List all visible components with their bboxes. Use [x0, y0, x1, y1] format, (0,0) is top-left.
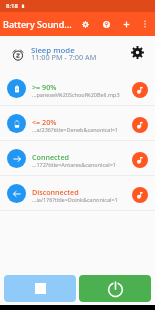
- button[interactable]: Help: [96, 12, 117, 36]
- button[interactable]: More options: [136, 12, 154, 36]
- button[interactable]: <= 20%: [0, 106, 155, 140]
- staticText: Disconnected: [32, 187, 79, 197]
- button[interactable]: Play sound: [126, 176, 155, 210]
- staticText: Sleep mode: [31, 45, 75, 56]
- button[interactable]: Add: [117, 12, 136, 36]
- staticText: <= 20%: [32, 117, 57, 127]
- button[interactable]: Sleep mode settings: [120, 36, 155, 71]
- staticText: 8:18: [6, 2, 18, 10]
- button[interactable]: Play sound: [126, 141, 155, 175]
- staticText: Connected: [32, 152, 69, 162]
- button[interactable]: Play sound: [126, 71, 155, 105]
- button[interactable]: Disconnected: [0, 176, 155, 210]
- staticText: ...172?title=Antares&canonical=1: [32, 161, 116, 168]
- button[interactable]: Settings: [74, 12, 96, 36]
- button[interactable]: Play sound: [126, 106, 155, 140]
- staticText: ...panesek%20School%20Bell.mp3: [32, 91, 120, 98]
- button[interactable]: Power: [79, 275, 151, 302]
- button[interactable]: Sleep mode: [0, 36, 155, 71]
- staticText: >= 90%: [32, 82, 57, 92]
- button[interactable]: Connected: [0, 141, 155, 175]
- staticText: Battery Sound...: [3, 18, 74, 30]
- staticText: ...ia/176?title=Doink&canonical=1: [32, 196, 118, 203]
- button[interactable]: Stop: [4, 275, 76, 302]
- button[interactable]: >= 90%: [0, 71, 155, 105]
- staticText: ...a/236?title=Deneb&canonical=1: [32, 126, 119, 133]
- staticText: 11:00 PM - 7:00 AM: [31, 52, 97, 62]
